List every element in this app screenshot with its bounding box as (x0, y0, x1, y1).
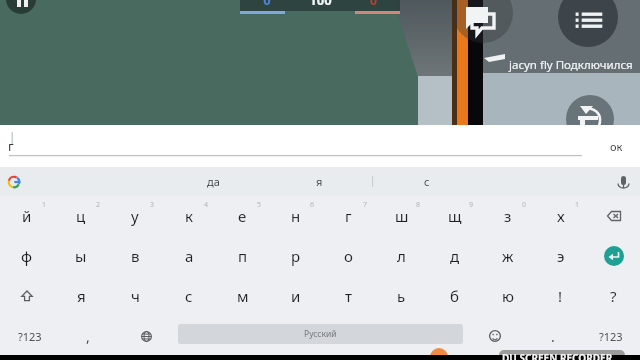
button[interactable]: Switch weapon (566, 95, 614, 143)
button[interactable]: ц (54, 196, 108, 236)
button[interactable]: о (322, 236, 375, 276)
button[interactable]: я (54, 276, 108, 316)
button[interactable]: р (269, 236, 322, 276)
staticText: з (504, 206, 512, 226)
button[interactable]: ы (54, 236, 108, 276)
staticText: ш (395, 206, 409, 226)
staticText: м (237, 286, 249, 306)
staticText: т (345, 286, 352, 306)
button[interactable]: с (162, 276, 216, 316)
staticText: у (131, 206, 139, 226)
staticText: , (86, 327, 90, 346)
button[interactable]: ! (534, 276, 587, 316)
staticText: 100 (294, 0, 347, 9)
button[interactable]: Русский (178, 324, 463, 344)
staticText: д (450, 246, 460, 266)
button[interactable]: ?123 (582, 316, 640, 356)
staticText: к (185, 206, 193, 226)
button[interactable]: да (160, 167, 266, 196)
button[interactable]: ?123 (0, 316, 59, 356)
staticText: р (291, 246, 301, 266)
staticText: ж (502, 246, 514, 266)
button[interactable]: Enter (587, 236, 640, 276)
button[interactable]: щ (428, 196, 481, 236)
button[interactable]: в (108, 236, 162, 276)
button[interactable]: я (266, 167, 373, 196)
staticText: 0 (240, 0, 294, 9)
button[interactable]: г (322, 196, 375, 236)
staticText: 7 (363, 200, 368, 210)
staticText: с (185, 286, 193, 306)
staticText: 0 (522, 200, 527, 210)
staticText: п (238, 246, 248, 266)
staticText: г (345, 206, 352, 226)
button[interactable]: д (428, 236, 481, 276)
button[interactable]: Shift (0, 276, 54, 316)
staticText: ок (610, 139, 623, 154)
button[interactable]: н (269, 196, 322, 236)
staticText: ? (610, 286, 617, 306)
staticText: ф (21, 246, 33, 266)
staticText: а (185, 246, 194, 266)
button[interactable]: Backspace (587, 196, 640, 236)
button[interactable]: ш (375, 196, 428, 236)
button[interactable]: т (322, 276, 375, 316)
button[interactable]: ь (375, 276, 428, 316)
staticText: х (557, 206, 565, 226)
staticText: DU SCREEN RECORDER (502, 351, 613, 360)
staticText: ы (75, 246, 87, 266)
button[interactable]: з (481, 196, 534, 236)
button[interactable]: у (108, 196, 162, 236)
button[interactable]: л (375, 236, 428, 276)
button[interactable]: Pause (6, 0, 36, 14)
staticText: ц (76, 206, 86, 226)
staticText: 4 (204, 200, 209, 210)
staticText: н (291, 206, 301, 226)
button[interactable]: й (0, 196, 54, 236)
button[interactable]: а (162, 236, 216, 276)
button[interactable]: Chat (453, 0, 513, 43)
button[interactable]: ф (0, 236, 54, 276)
staticText: ?123 (18, 329, 42, 344)
button[interactable]: . (524, 316, 582, 356)
button[interactable]: ? (587, 276, 640, 316)
staticText: да (207, 174, 220, 189)
staticText: о (344, 246, 353, 266)
button[interactable]: м (216, 276, 269, 316)
button[interactable]: Change language (117, 316, 175, 356)
button[interactable]: , (59, 316, 117, 356)
staticText: я (316, 174, 323, 189)
staticText: 9 (469, 200, 474, 210)
button[interactable]: ч (108, 276, 162, 316)
button[interactable]: б (428, 276, 481, 316)
staticText: ч (131, 286, 140, 306)
staticText: ! (558, 286, 563, 306)
staticText: 1 (575, 200, 580, 210)
staticText: 5 (257, 200, 262, 210)
staticText: б (450, 286, 459, 306)
staticText: щ (448, 206, 462, 226)
button[interactable]: и (269, 276, 322, 316)
staticText: в (131, 246, 140, 266)
button[interactable]: е (216, 196, 269, 236)
other: Voice input (614, 173, 632, 191)
button[interactable]: ю (481, 276, 534, 316)
button[interactable]: Scoreboard (558, 0, 618, 47)
button[interactable]: Emoji (466, 316, 524, 356)
button[interactable]: х (534, 196, 587, 236)
staticText: 2 (96, 200, 101, 210)
button[interactable]: к (162, 196, 216, 236)
staticText: 3 (150, 200, 155, 210)
button[interactable]: э (534, 236, 587, 276)
staticText: 0 (347, 0, 400, 9)
button[interactable]: п (216, 236, 269, 276)
staticText: е (238, 206, 247, 226)
staticText: 1 (42, 200, 47, 210)
button[interactable]: с (373, 167, 480, 196)
staticText: ь (397, 286, 406, 306)
staticText: и (291, 286, 301, 306)
staticText: я (77, 286, 86, 306)
staticText: 8 (416, 200, 421, 210)
button[interactable]: ж (481, 236, 534, 276)
button[interactable]: ок (592, 125, 640, 167)
